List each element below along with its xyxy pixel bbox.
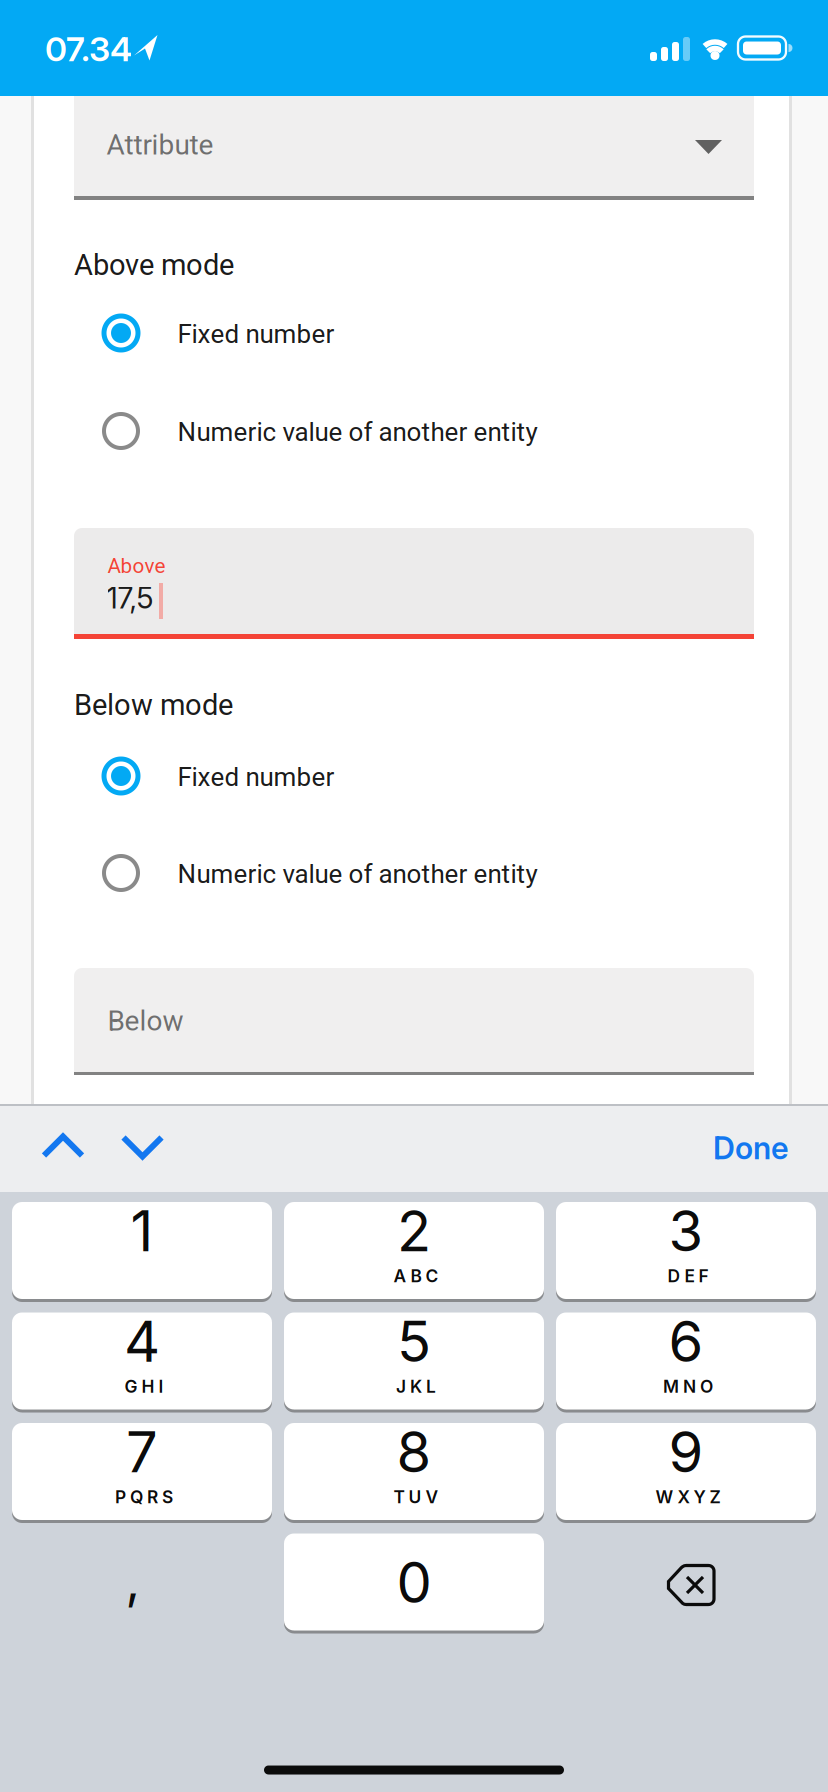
staticText: Numeric value of another entity: [177, 859, 537, 889]
staticText: 7: [126, 1418, 158, 1486]
staticText: Numeric value of another entity: [177, 417, 537, 447]
staticText: Above mode: [74, 248, 234, 282]
button[interactable]: 4: [12, 1312, 272, 1412]
staticText: Below: [107, 1005, 183, 1037]
staticText: 3: [668, 1197, 703, 1265]
button[interactable]: Attribute: [74, 96, 754, 200]
button[interactable]: Numeric value of another entity: [74, 831, 734, 915]
staticText: 2: [397, 1197, 431, 1265]
staticText: Done: [713, 1129, 789, 1166]
staticText: Fixed number: [177, 319, 334, 349]
staticText: ABC: [393, 1265, 438, 1286]
button[interactable]: 3: [556, 1202, 816, 1302]
button[interactable]: 6: [556, 1312, 816, 1412]
button[interactable]: 0: [284, 1533, 544, 1633]
button[interactable]: 2: [284, 1202, 544, 1302]
button[interactable]: 7: [12, 1423, 272, 1523]
staticText: Fixed number: [177, 762, 334, 792]
staticText: 5: [397, 1308, 431, 1375]
staticText: 8: [396, 1418, 431, 1486]
staticText: 4: [124, 1308, 160, 1375]
staticText: JKL: [396, 1376, 436, 1397]
staticText: TUV: [393, 1486, 438, 1507]
staticText: 0: [396, 1549, 431, 1616]
button[interactable]: 9: [556, 1423, 816, 1523]
button[interactable]: Fixed number: [74, 734, 734, 818]
staticText: Above: [107, 554, 165, 578]
staticText: Below mode: [74, 688, 233, 722]
staticText: Attribute: [106, 129, 213, 161]
button[interactable]: Previous field: [30, 1122, 96, 1169]
button[interactable]: Delete: [647, 1544, 735, 1626]
staticText: ,: [125, 1549, 140, 1611]
staticText: 17,5: [106, 580, 153, 616]
button[interactable]: Comma: [3, 1530, 263, 1630]
button[interactable]: Next field: [109, 1123, 175, 1170]
button[interactable]: Fixed number: [74, 291, 734, 375]
staticText: GHI: [124, 1376, 163, 1397]
staticText: 9: [668, 1418, 703, 1486]
button[interactable]: Done: [703, 1119, 799, 1176]
staticText: 1: [130, 1197, 153, 1265]
button[interactable]: Numeric value of another entity: [74, 389, 734, 473]
button[interactable]: 5: [284, 1312, 544, 1412]
staticText: DEF: [667, 1265, 708, 1286]
staticText: MNO: [663, 1376, 713, 1397]
staticText: WXYZ: [655, 1486, 720, 1507]
button[interactable]: 8: [284, 1423, 544, 1523]
staticText: PQRS: [115, 1486, 173, 1507]
staticText: 6: [668, 1308, 703, 1375]
staticText: 07.34: [45, 28, 132, 69]
button[interactable]: 1: [12, 1202, 272, 1302]
